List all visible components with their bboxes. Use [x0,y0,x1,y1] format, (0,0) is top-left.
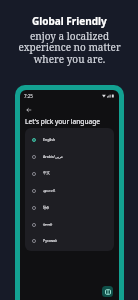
button[interactable]: Translate [102,286,113,297]
button[interactable]: English [25,131,114,148]
staticText: Global Friendly [32,14,107,28]
staticText: Let's pick your language [25,117,100,126]
staticText: ગુજરાતી [43,189,56,193]
button[interactable]: 中文 [25,165,114,182]
button[interactable]: Back [23,104,34,115]
button[interactable]: Arabic/عربى [25,148,114,165]
staticText: 中文 [43,171,51,176]
staticText: Русский [43,238,57,243]
button[interactable]: ગુજરાતી [25,182,114,199]
staticText: 7:25 [24,93,33,99]
button[interactable]: हिंदी [25,199,114,216]
button[interactable]: ਪੰਜਾਬੀ [25,216,114,233]
staticText: हिंदी [43,205,49,210]
staticText: ਪੰਜਾਬੀ [43,223,53,227]
button[interactable]: Русский [25,233,114,248]
staticText: Arabic/عربى [43,154,64,159]
staticText: enjoy a localized experience no matter w… [18,29,121,66]
staticText: English [43,137,56,142]
